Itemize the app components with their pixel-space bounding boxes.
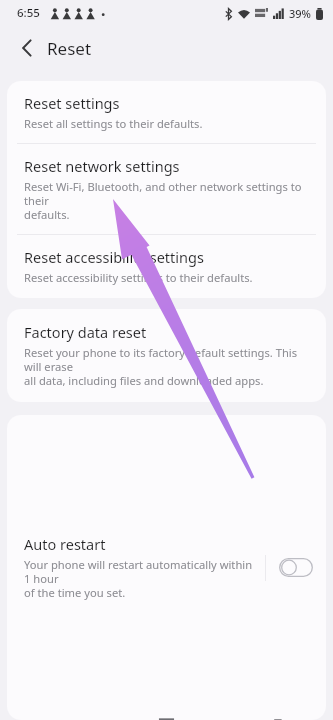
staticText: Reset Wi-Fi, Bluetooth, and other networ… <box>24 179 309 222</box>
staticText: Reset settings <box>24 93 120 113</box>
staticText: Reset your phone to its factory default … <box>24 345 309 388</box>
button[interactable]: Auto restart toggle <box>266 415 326 720</box>
button[interactable]: Factory data reset <box>7 309 326 402</box>
button[interactable]: Back <box>8 29 46 67</box>
staticText: 6:55 <box>17 5 40 21</box>
button[interactable]: Reset accessibility settings <box>7 235 326 298</box>
staticText: Reset accessibility settings to their de… <box>24 270 253 285</box>
button[interactable]: Reset network settings <box>7 144 326 234</box>
staticText: Factory data reset <box>24 322 147 342</box>
button[interactable]: Reset settings <box>7 81 326 143</box>
staticText: Reset <box>47 37 92 60</box>
staticText: Reset all settings to their defaults. <box>24 116 203 131</box>
staticText: Your phone will restart automatically wi… <box>24 557 257 600</box>
staticText: Auto restart <box>24 534 106 554</box>
staticText: 39% <box>289 6 311 21</box>
button[interactable]: Auto restart <box>7 521 265 614</box>
staticText: Reset accessibility settings <box>24 247 204 267</box>
staticText: Reset network settings <box>24 156 180 176</box>
